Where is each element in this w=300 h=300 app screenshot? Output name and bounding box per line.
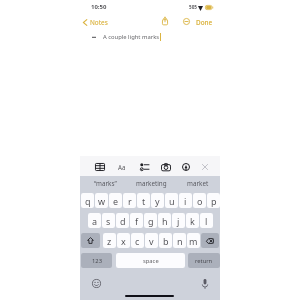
- staticText: d: [120, 215, 126, 227]
- staticText: return: [195, 257, 213, 265]
- button[interactable]: d: [116, 213, 129, 228]
- button[interactable]: Share: [160, 16, 170, 26]
- staticText: p: [211, 195, 217, 207]
- button[interactable]: Checklist: [136, 158, 152, 176]
- button[interactable]: y: [151, 193, 164, 208]
- button[interactable]: j: [172, 213, 185, 228]
- button[interactable]: u: [165, 193, 178, 208]
- staticText: marketing: [136, 179, 167, 188]
- button[interactable]: q: [81, 193, 94, 208]
- button[interactable]: Markup: [178, 158, 194, 176]
- staticText: j: [177, 215, 180, 227]
- button[interactable]: return: [188, 253, 220, 268]
- button[interactable]: n: [173, 233, 186, 248]
- staticText: v: [149, 235, 154, 247]
- button[interactable]: a: [88, 213, 101, 228]
- button[interactable]: t: [137, 193, 150, 208]
- staticText: t: [142, 195, 146, 207]
- button[interactable]: p: [207, 193, 220, 208]
- staticText: u: [169, 195, 175, 207]
- button[interactable]: Emoji: [91, 278, 102, 289]
- button[interactable]: Done: [196, 18, 213, 27]
- staticText: 123: [92, 257, 102, 265]
- button[interactable]: Hide keyboard: [197, 158, 213, 176]
- button[interactable]: Notes: [83, 18, 108, 27]
- staticText: b: [163, 235, 169, 247]
- staticText: a: [92, 215, 98, 227]
- staticText: n: [177, 235, 183, 247]
- staticText: g: [148, 215, 154, 227]
- button[interactable]: 123: [81, 253, 112, 268]
- button[interactable]: s: [102, 213, 115, 228]
- staticText: 10:50: [91, 3, 107, 11]
- staticText: “marks”: [94, 179, 117, 188]
- staticText: 505: [189, 4, 197, 10]
- button[interactable]: marketing: [128, 175, 175, 191]
- button[interactable]: b: [159, 233, 172, 248]
- staticText: Aa: [118, 163, 126, 171]
- button[interactable]: Shift: [81, 233, 100, 248]
- button[interactable]: o: [193, 193, 206, 208]
- staticText: r: [128, 195, 132, 207]
- button[interactable]: c: [131, 233, 144, 248]
- button[interactable]: i: [179, 193, 192, 208]
- staticText: o: [197, 195, 203, 207]
- button[interactable]: More options: [181, 16, 191, 26]
- staticText: y: [155, 195, 160, 207]
- button[interactable]: m: [187, 233, 200, 248]
- staticText: z: [107, 235, 112, 247]
- button[interactable]: x: [117, 233, 130, 248]
- staticText: s: [106, 215, 111, 227]
- button[interactable]: Dictation: [199, 278, 210, 289]
- button[interactable]: space: [116, 253, 185, 268]
- button[interactable]: “marks”: [82, 175, 129, 191]
- staticText: i: [184, 195, 187, 207]
- staticText: q: [85, 195, 91, 207]
- button[interactable]: Backspace: [201, 233, 219, 248]
- staticText: Done: [196, 18, 213, 27]
- button[interactable]: market: [174, 175, 221, 191]
- button[interactable]: f: [130, 213, 143, 228]
- staticText: k: [190, 215, 195, 227]
- staticText: w: [98, 195, 106, 207]
- button[interactable]: Camera: [158, 158, 174, 176]
- button[interactable]: Text format: [114, 158, 130, 176]
- staticText: space: [143, 257, 159, 265]
- button[interactable]: g: [144, 213, 157, 228]
- button[interactable]: h: [158, 213, 171, 228]
- staticText: f: [135, 215, 139, 227]
- staticText: c: [135, 235, 140, 247]
- button[interactable]: v: [145, 233, 158, 248]
- staticText: market: [187, 179, 209, 188]
- staticText: h: [162, 215, 168, 227]
- button[interactable]: w: [95, 193, 108, 208]
- button[interactable]: r: [123, 193, 136, 208]
- button[interactable]: k: [186, 213, 199, 228]
- staticText: e: [113, 195, 119, 207]
- staticText: m: [189, 235, 198, 247]
- button[interactable]: e: [109, 193, 122, 208]
- button[interactable]: Table: [92, 158, 108, 176]
- staticText: l: [205, 215, 208, 227]
- button[interactable]: z: [103, 233, 116, 248]
- staticText: x: [121, 235, 126, 247]
- staticText: A couple light marks: [103, 33, 160, 41]
- button[interactable]: l: [200, 213, 213, 228]
- staticText: Notes: [90, 18, 108, 27]
